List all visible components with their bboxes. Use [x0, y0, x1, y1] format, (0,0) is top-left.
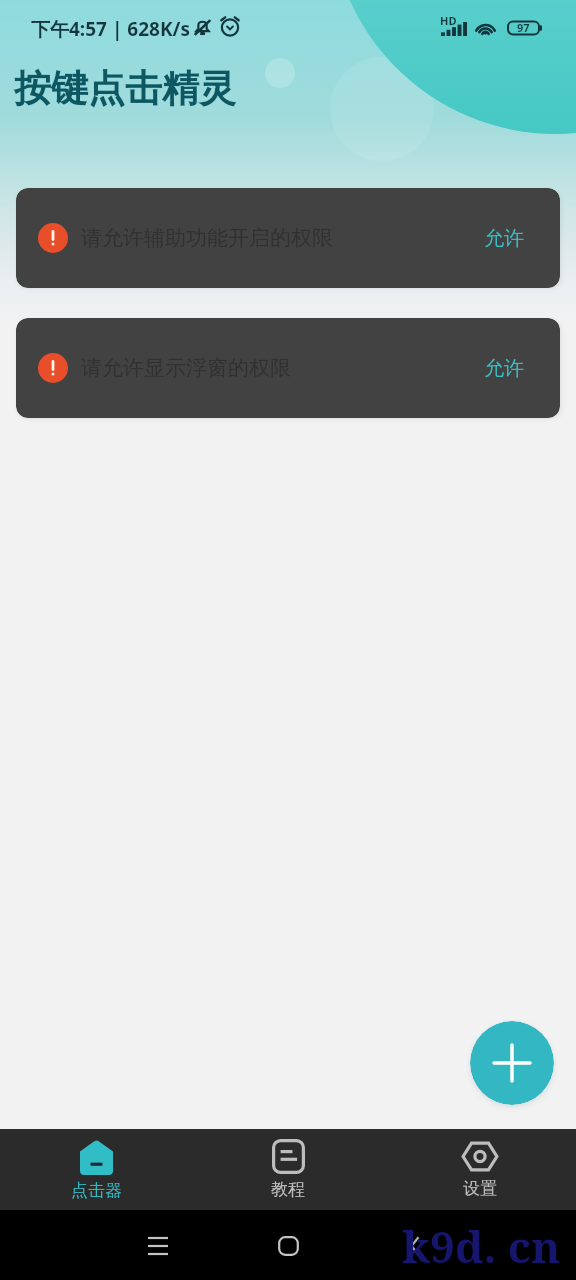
staticText: HD: [440, 13, 457, 28]
staticText: 教程: [271, 1179, 305, 1200]
button[interactable]: 教程: [192, 1129, 384, 1210]
button[interactable]: Back: [407, 1236, 423, 1256]
button[interactable]: 允许: [470, 346, 538, 391]
staticText: k9d. cn: [402, 1216, 561, 1276]
button[interactable]: Add: [470, 1021, 554, 1105]
staticText: 97: [517, 20, 530, 35]
staticText: 允许: [484, 226, 524, 251]
button[interactable]: Recents: [148, 1237, 168, 1255]
button[interactable]: 请允许显示浮窗的权限: [16, 318, 560, 418]
button[interactable]: 请允许辅助功能开启的权限: [16, 188, 560, 288]
button[interactable]: Home: [278, 1236, 299, 1256]
staticText: 允许: [484, 356, 524, 381]
staticText: 请允许显示浮窗的权限: [81, 355, 291, 381]
staticText: 点击器: [71, 1180, 122, 1201]
button[interactable]: 允许: [470, 216, 538, 261]
button[interactable]: 点击器: [0, 1129, 192, 1210]
staticText: 下午4:57 | 628K/s: [31, 16, 190, 42]
staticText: 请允许辅助功能开启的权限: [81, 225, 333, 251]
staticText: 按键点击精灵: [14, 65, 236, 112]
button[interactable]: 设置: [384, 1129, 576, 1210]
staticText: 设置: [463, 1178, 497, 1199]
